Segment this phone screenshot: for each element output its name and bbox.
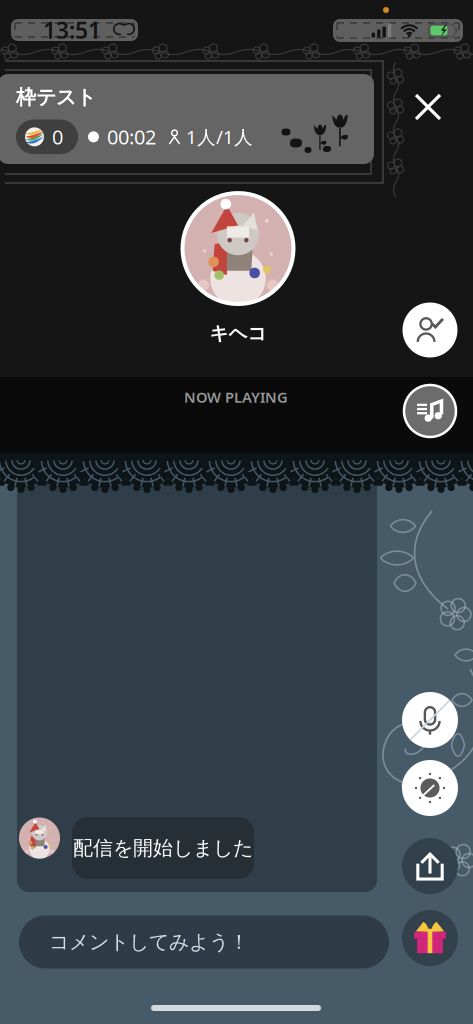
button[interactable]: Share [402, 838, 458, 894]
staticText: NOW PLAYING [184, 387, 288, 407]
staticText: 枠テスト [16, 85, 96, 110]
staticText: 配信を開始しました [73, 836, 253, 860]
button[interactable]: Close [407, 86, 449, 128]
staticText: キヘコ [209, 322, 266, 345]
staticText: 00:02 [107, 124, 156, 150]
button[interactable]: Music [404, 385, 456, 437]
button[interactable]: Gift [402, 910, 458, 966]
button[interactable]: コメントしてみよう！ [19, 915, 389, 968]
button[interactable]: Follow [402, 302, 457, 357]
button[interactable]: Effects [402, 760, 458, 816]
button[interactable]: Microphone [402, 692, 458, 748]
button[interactable]: キヘコ [180, 191, 295, 345]
staticText: コメントしてみよう！ [49, 930, 249, 954]
staticText: 0 [52, 124, 63, 150]
staticText: 13:51 [43, 15, 101, 45]
staticText: 1人/1人 [186, 124, 253, 149]
